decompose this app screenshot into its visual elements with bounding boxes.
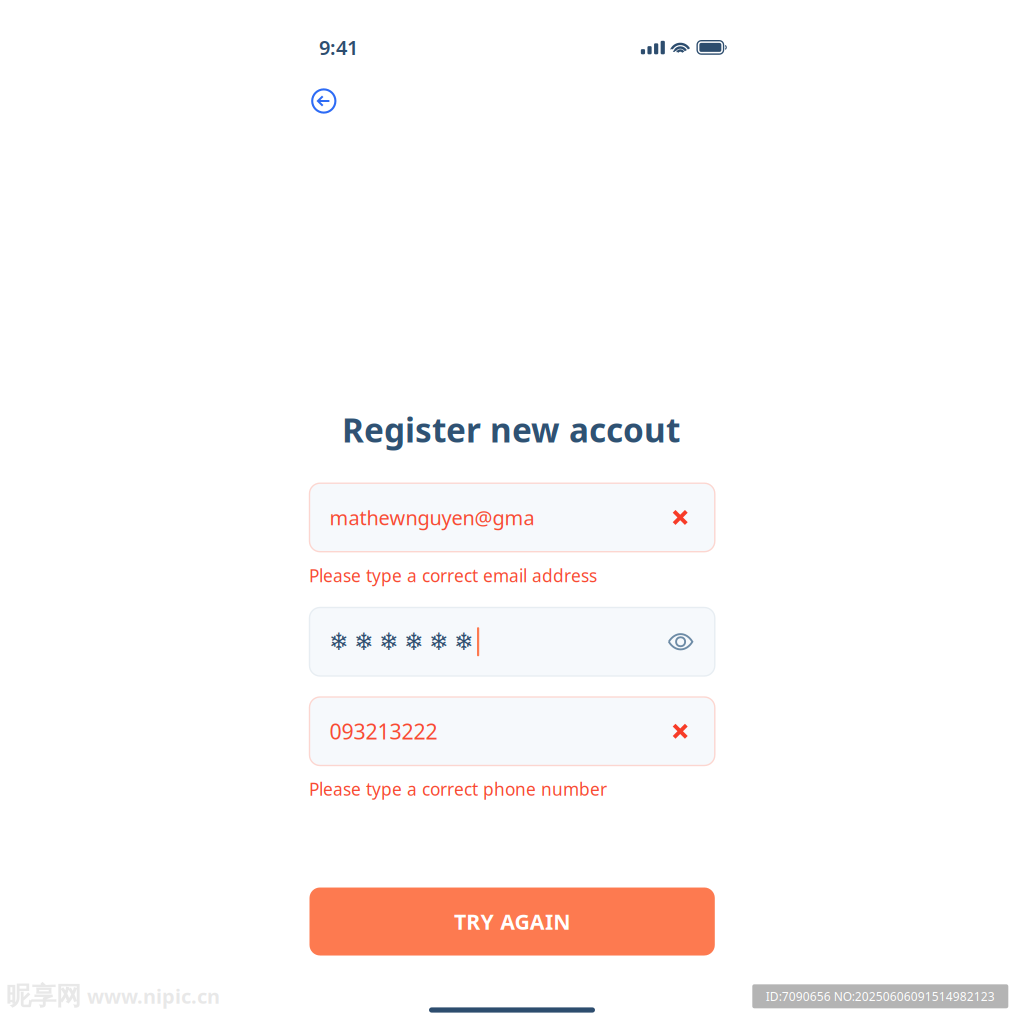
button[interactable]: TRY AGAIN xyxy=(309,887,715,955)
button[interactable]: Clear Phone number xyxy=(672,723,688,739)
button[interactable]: Back xyxy=(302,79,346,123)
button[interactable]: Phone number xyxy=(309,697,715,765)
staticText: ID:7090656 NO:20250606091514982123 xyxy=(766,988,995,1004)
staticText: Please type a correct email address xyxy=(309,564,597,587)
button[interactable]: Password xyxy=(309,607,715,676)
staticText: www.nipic.cn xyxy=(87,983,220,1009)
staticText: ❄ ❄ ❄ ❄ ❄ ❄ xyxy=(329,628,474,655)
staticText: 093213222 xyxy=(329,717,437,745)
staticText: Register new accout xyxy=(342,407,680,452)
staticText: 昵享网 xyxy=(6,980,81,1011)
staticText: TRY AGAIN xyxy=(454,907,570,936)
staticText: Please type a correct phone number xyxy=(309,777,607,800)
button[interactable]: Show password xyxy=(668,633,693,651)
button[interactable]: Email xyxy=(309,483,715,552)
staticText: mathewnguyen@gma xyxy=(329,504,534,531)
button[interactable]: Clear Email xyxy=(672,509,688,526)
staticText: 9:41 xyxy=(319,34,358,61)
